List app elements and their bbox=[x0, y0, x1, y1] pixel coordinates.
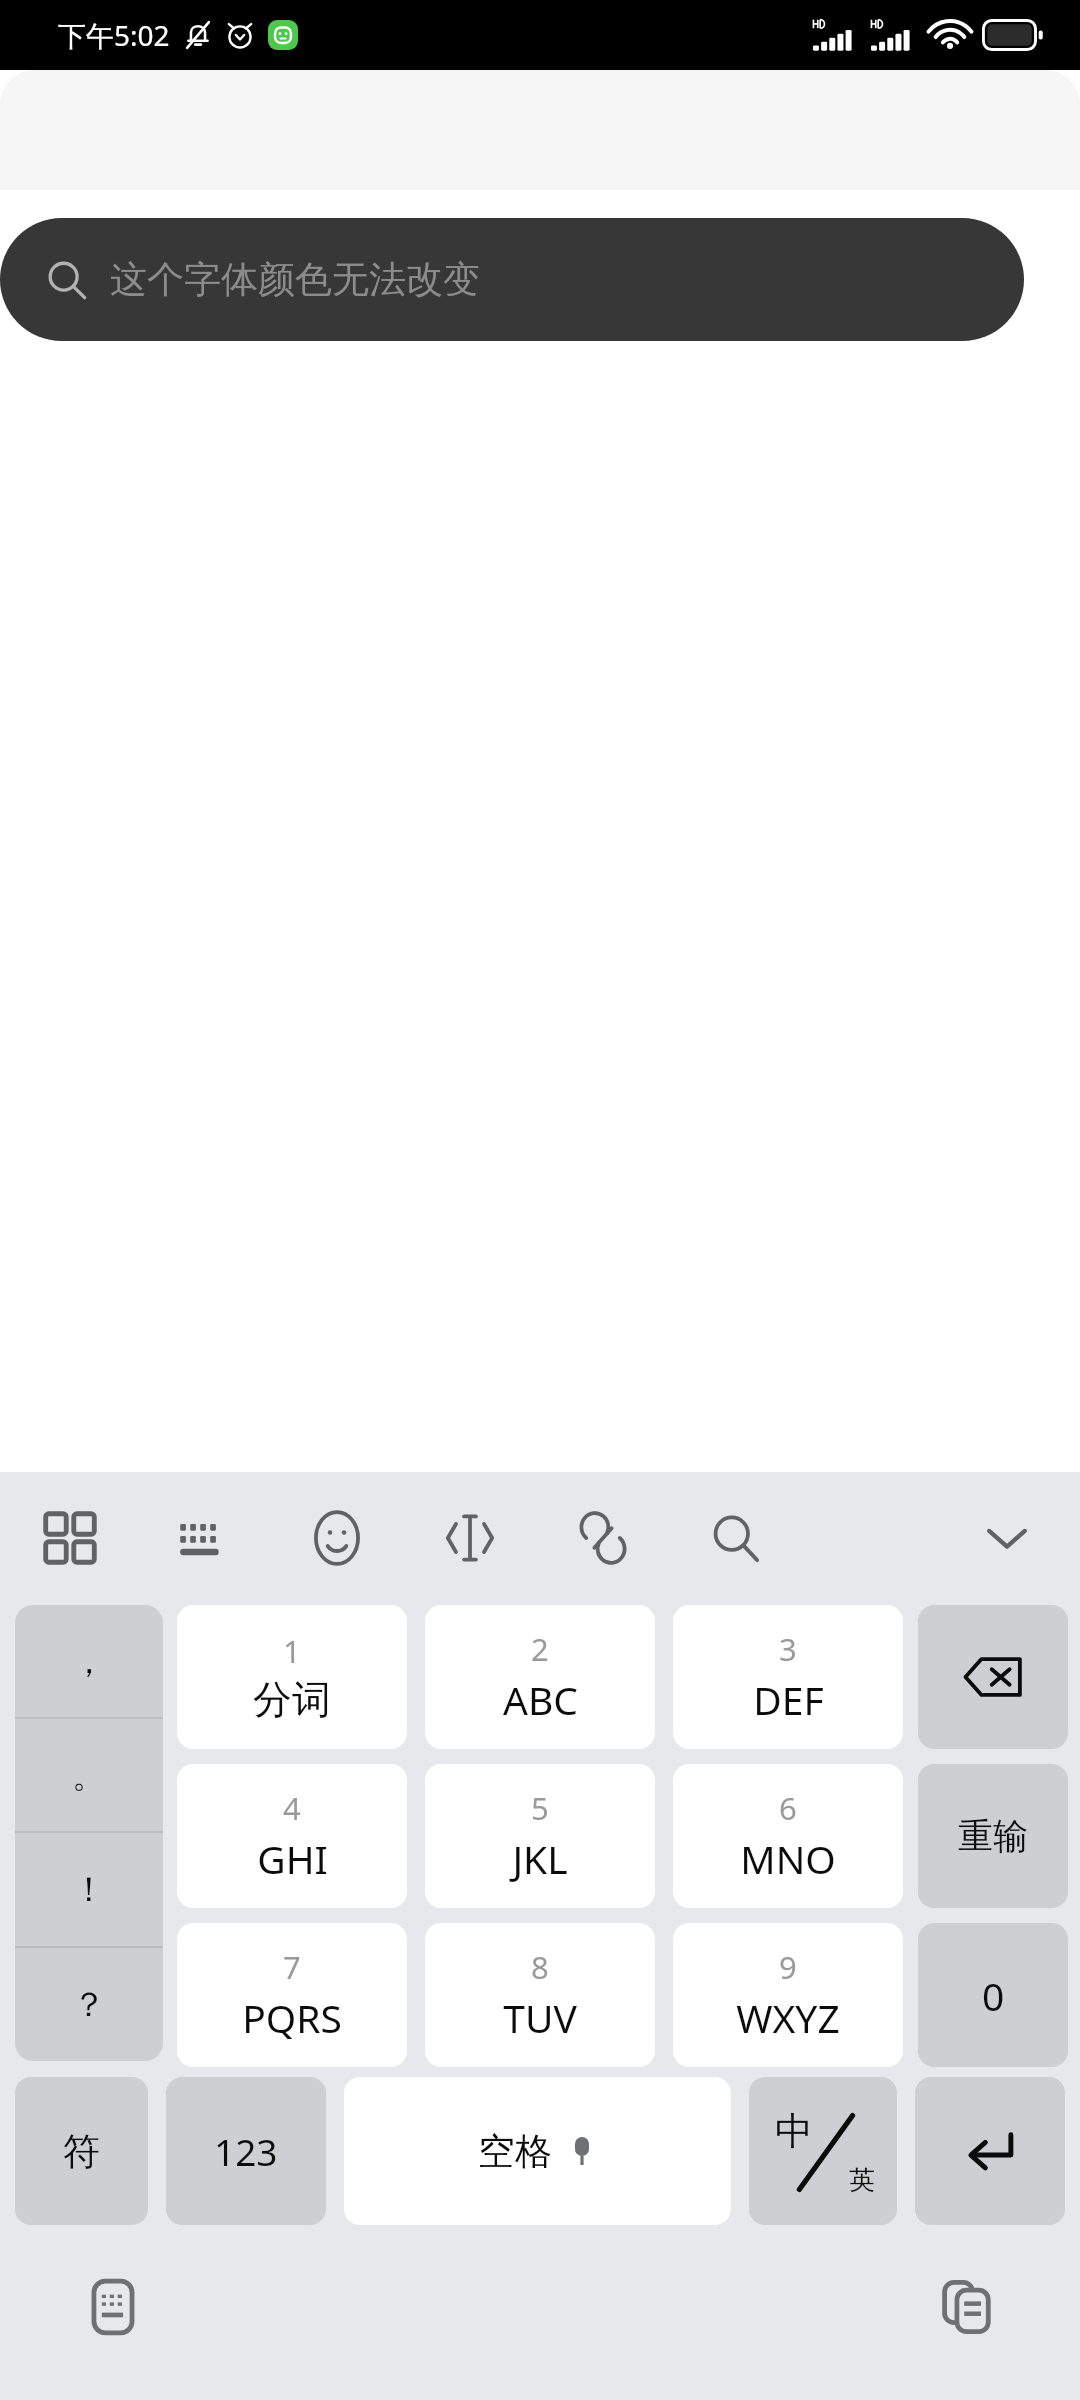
staticText: 2 bbox=[531, 1628, 549, 1670]
button[interactable]: 9 bbox=[673, 1923, 903, 2067]
staticText: 这个字体颜色无法改变 bbox=[110, 256, 480, 303]
staticText: ？ bbox=[72, 1983, 106, 2026]
button[interactable]: Switch input method bbox=[58, 2252, 168, 2362]
button[interactable]: Emoji bbox=[282, 1483, 392, 1593]
button[interactable]: 重输 bbox=[918, 1764, 1068, 1908]
staticText: JKL bbox=[512, 1832, 568, 1885]
staticText: 分词 bbox=[253, 1675, 331, 1724]
staticText: 符 bbox=[63, 2128, 100, 2175]
button[interactable]: Keyboard layouts bbox=[15, 1483, 125, 1593]
button[interactable]: 2 bbox=[425, 1605, 655, 1749]
button[interactable]: 8 bbox=[425, 1923, 655, 2067]
staticText: ， bbox=[72, 1640, 106, 1683]
button[interactable]: 符 bbox=[15, 2077, 148, 2225]
button[interactable]: 1 bbox=[177, 1605, 407, 1749]
button[interactable]: 5 bbox=[425, 1764, 655, 1908]
staticText: 4 bbox=[283, 1787, 301, 1829]
button[interactable]: Edit text bbox=[415, 1483, 525, 1593]
button[interactable]: Clipboard bbox=[912, 2252, 1022, 2362]
staticText: 8 bbox=[531, 1946, 549, 1988]
button[interactable]: ？ bbox=[15, 1948, 163, 2061]
button[interactable]: ， bbox=[15, 1605, 163, 1717]
staticText: 中 bbox=[775, 2107, 813, 2155]
staticText: 空格 bbox=[478, 2128, 552, 2175]
staticText: DEF bbox=[753, 1673, 824, 1726]
staticText: MNO bbox=[740, 1832, 836, 1885]
button[interactable]: Hide keyboard bbox=[952, 1483, 1062, 1593]
staticText: 7 bbox=[283, 1946, 301, 1988]
button[interactable]: 中 bbox=[749, 2077, 897, 2225]
staticText: 3 bbox=[779, 1628, 797, 1670]
button[interactable]: 7 bbox=[177, 1923, 407, 2067]
staticText: WXYZ bbox=[736, 1991, 840, 2044]
button[interactable]: Attach bbox=[548, 1483, 658, 1593]
staticText: 英 bbox=[849, 2164, 875, 2197]
button[interactable]: 123 bbox=[166, 2077, 326, 2225]
button[interactable]: 4 bbox=[177, 1764, 407, 1908]
staticText: 。 bbox=[72, 1754, 106, 1797]
button[interactable]: 空格 bbox=[344, 2077, 731, 2225]
button[interactable]: 6 bbox=[673, 1764, 903, 1908]
staticText: ABC bbox=[503, 1673, 578, 1726]
button[interactable]: 3 bbox=[673, 1605, 903, 1749]
staticText: 0 bbox=[982, 1969, 1005, 2022]
staticText: 1 bbox=[283, 1630, 301, 1672]
staticText: 9 bbox=[779, 1946, 797, 1988]
button[interactable]: 0 bbox=[918, 1923, 1068, 2067]
staticText: 下午5:02 bbox=[58, 16, 170, 54]
staticText: 5 bbox=[531, 1787, 549, 1829]
staticText: PQRS bbox=[242, 1991, 342, 2044]
staticText: 重输 bbox=[958, 1814, 1028, 1858]
staticText: ！ bbox=[72, 1868, 106, 1911]
button[interactable]: 。 bbox=[15, 1719, 163, 1831]
staticText: GHI bbox=[257, 1832, 328, 1885]
button[interactable]: Search bbox=[680, 1483, 790, 1593]
button[interactable]: Backspace bbox=[918, 1605, 1068, 1749]
button[interactable]: Keyboard settings bbox=[149, 1483, 259, 1593]
staticText: 6 bbox=[779, 1787, 797, 1829]
button[interactable]: ！ bbox=[15, 1833, 163, 1946]
button[interactable]: Enter bbox=[915, 2077, 1065, 2225]
staticText: TUV bbox=[503, 1991, 577, 2044]
staticText: 123 bbox=[214, 2126, 278, 2176]
button[interactable]: 这个字体颜色无法改变 bbox=[0, 218, 1024, 341]
